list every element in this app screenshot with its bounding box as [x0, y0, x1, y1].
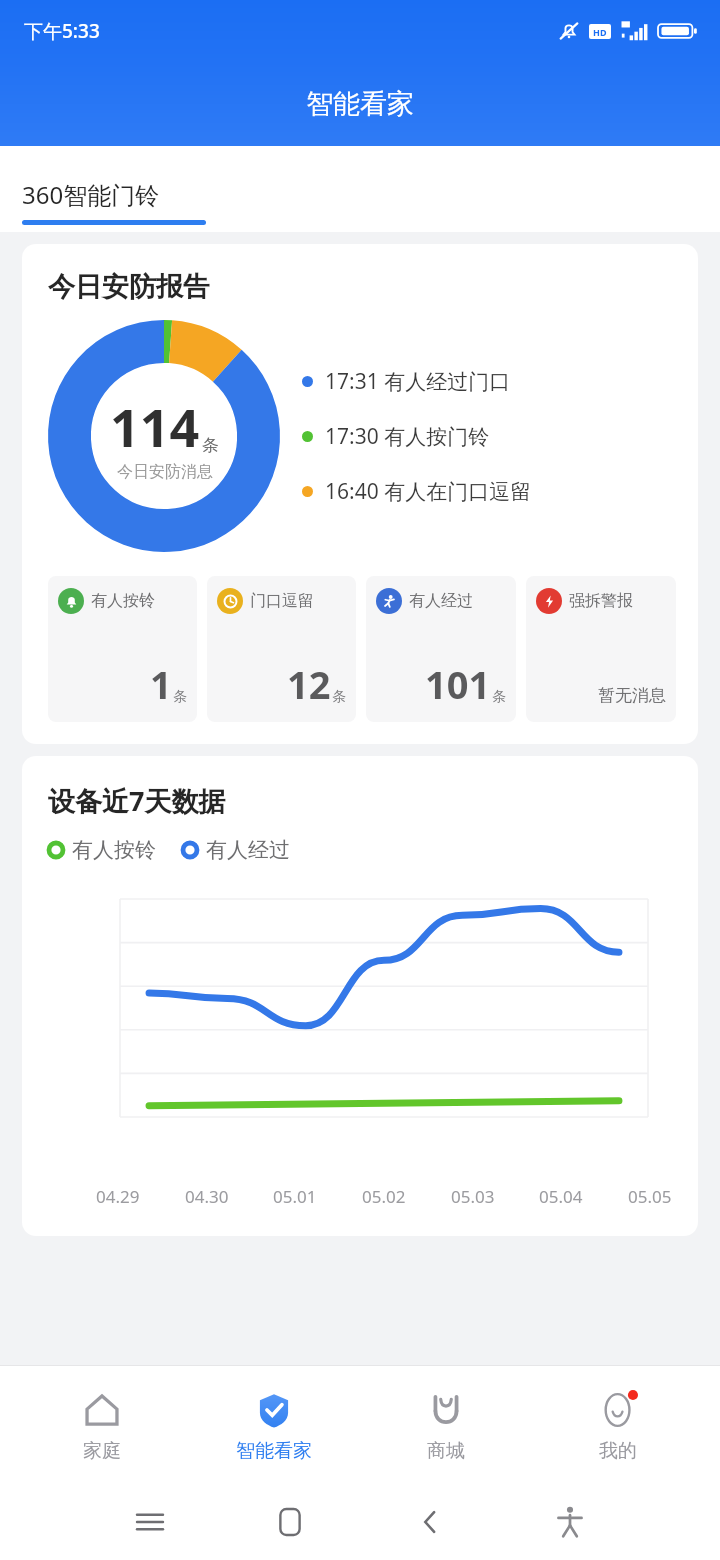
staticText: 114	[110, 391, 200, 462]
staticText: 17:30 有人按门铃	[325, 422, 490, 451]
staticText: 家庭	[83, 1439, 121, 1463]
button[interactable]: 家庭	[32, 1366, 172, 1484]
staticText: 1	[150, 658, 172, 710]
button[interactable]: 17:30 有人按门铃	[302, 422, 490, 451]
staticText: 12	[287, 658, 331, 710]
staticText: 设备近7天数据	[48, 782, 226, 819]
staticText: 下午5:33	[24, 18, 100, 44]
staticText: 条	[492, 688, 506, 706]
button[interactable]: 有人经过	[366, 576, 516, 722]
staticText: 有人经过	[206, 837, 290, 863]
staticText: 我的	[599, 1439, 637, 1463]
button[interactable]: 17:31 有人经过门口	[302, 367, 511, 396]
staticText: 05.02	[362, 1185, 406, 1208]
staticText: 04.29	[96, 1185, 140, 1208]
staticText: 16:40 有人在门口逗留	[325, 477, 532, 506]
staticText: 条	[173, 688, 187, 706]
staticText: 101	[425, 658, 491, 710]
staticText: 商城	[427, 1439, 465, 1463]
staticText: 条	[202, 435, 219, 456]
button[interactable]: Accessibility	[540, 1492, 600, 1552]
staticText: 有人经过	[409, 591, 473, 611]
button[interactable]: 有人按铃	[48, 576, 197, 722]
staticText: 强拆警报	[569, 591, 633, 611]
button[interactable]: 商城	[376, 1366, 516, 1484]
button[interactable]: Menu	[120, 1492, 180, 1552]
staticText: 17:31 有人经过门口	[325, 367, 511, 396]
button[interactable]: 有人经过	[182, 837, 290, 863]
staticText: HD	[593, 26, 607, 38]
staticText: 05.05	[628, 1185, 672, 1208]
button[interactable]: 强拆警报	[526, 576, 676, 722]
staticText: 门口逗留	[250, 591, 314, 611]
staticText: 今日安防消息	[117, 462, 213, 482]
staticText: 暂无消息	[598, 685, 666, 706]
button[interactable]: 门口逗留	[207, 576, 356, 722]
staticText: 智能看家	[306, 87, 414, 121]
button[interactable]: 智能看家	[204, 1366, 344, 1484]
staticText: 有人按铃	[72, 837, 156, 863]
staticText: 有人按铃	[91, 591, 155, 611]
staticText: 05.01	[273, 1185, 317, 1208]
button[interactable]: 16:40 有人在门口逗留	[302, 477, 532, 506]
staticText: 05.04	[539, 1185, 583, 1208]
button[interactable]: Back	[400, 1492, 460, 1552]
button[interactable]: 我的	[548, 1366, 688, 1484]
staticText: 04.30	[185, 1185, 229, 1208]
button[interactable]: 360智能门铃	[22, 178, 160, 211]
staticText: 05.03	[451, 1185, 495, 1208]
button[interactable]: Home	[260, 1492, 320, 1552]
staticText: 今日安防报告	[48, 270, 210, 304]
staticText: 智能看家	[236, 1439, 312, 1463]
staticText: 条	[332, 688, 346, 706]
button[interactable]: 有人按铃	[48, 837, 156, 863]
